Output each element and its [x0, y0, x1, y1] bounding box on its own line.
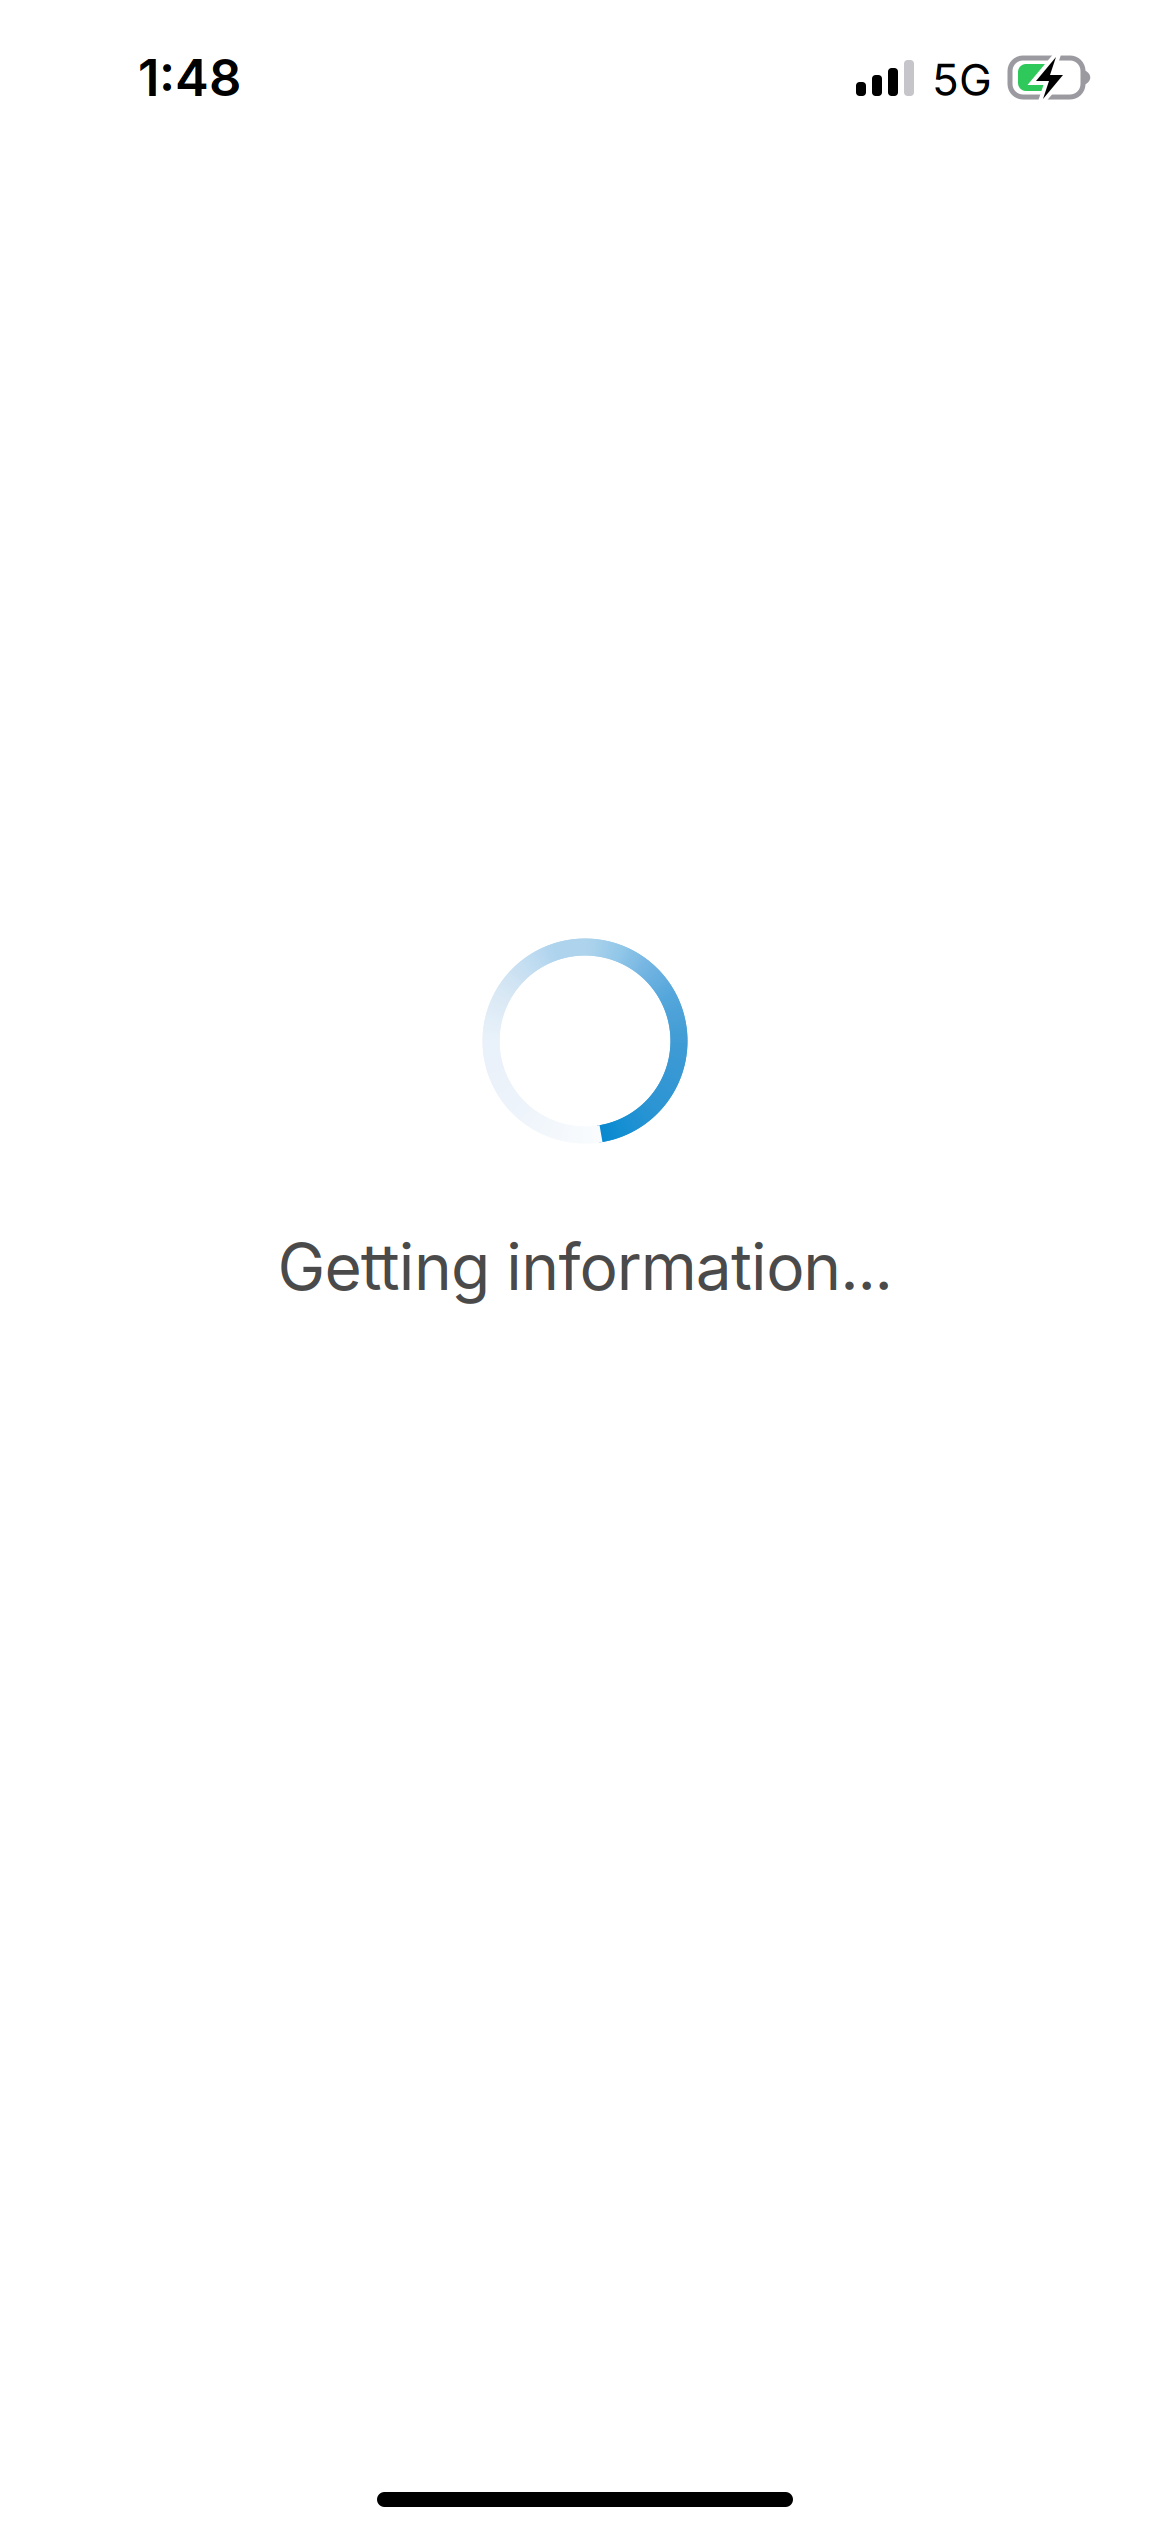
staticText: 5G — [932, 53, 992, 106]
staticText: Getting information... — [277, 1228, 893, 1305]
group: Loading — [0, 0, 205, 205]
staticText: 1:48 — [138, 47, 241, 108]
